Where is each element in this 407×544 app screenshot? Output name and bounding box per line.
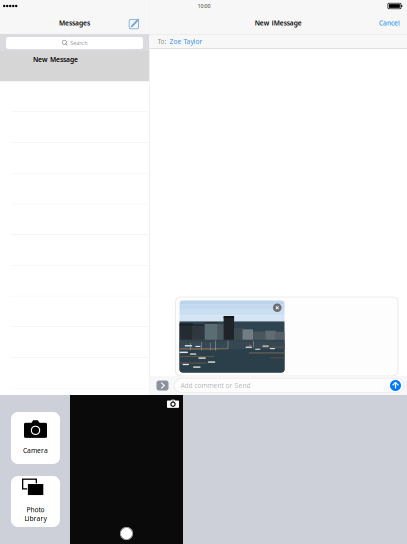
button[interactable]: Cancel [376,15,403,31]
staticText: Cancel [379,19,400,27]
staticText: Zoe Taylor [169,37,202,46]
button[interactable]: Camera [11,412,60,464]
button[interactable]: Photo [11,476,60,527]
button[interactable]: Switch camera [167,399,179,408]
button[interactable]: To: [149,34,407,48]
button[interactable]: Remove attachment [273,303,281,312]
staticText: Search [70,39,87,47]
button[interactable]: Send [390,380,401,391]
button[interactable]: Show attachments [156,380,168,390]
staticText: New iMessage [255,19,302,27]
staticText: New Message [33,55,78,64]
staticText: Messages [59,19,90,27]
staticText: 10:00 [197,2,210,10]
staticText: To: [157,37,166,46]
staticText: Camera [23,446,48,455]
staticText: Add comment or Send [180,381,250,390]
staticText: Photo [26,505,44,514]
staticText: Library [24,514,46,523]
button[interactable]: New Message [125,13,145,33]
button[interactable]: New Message [0,51,149,81]
